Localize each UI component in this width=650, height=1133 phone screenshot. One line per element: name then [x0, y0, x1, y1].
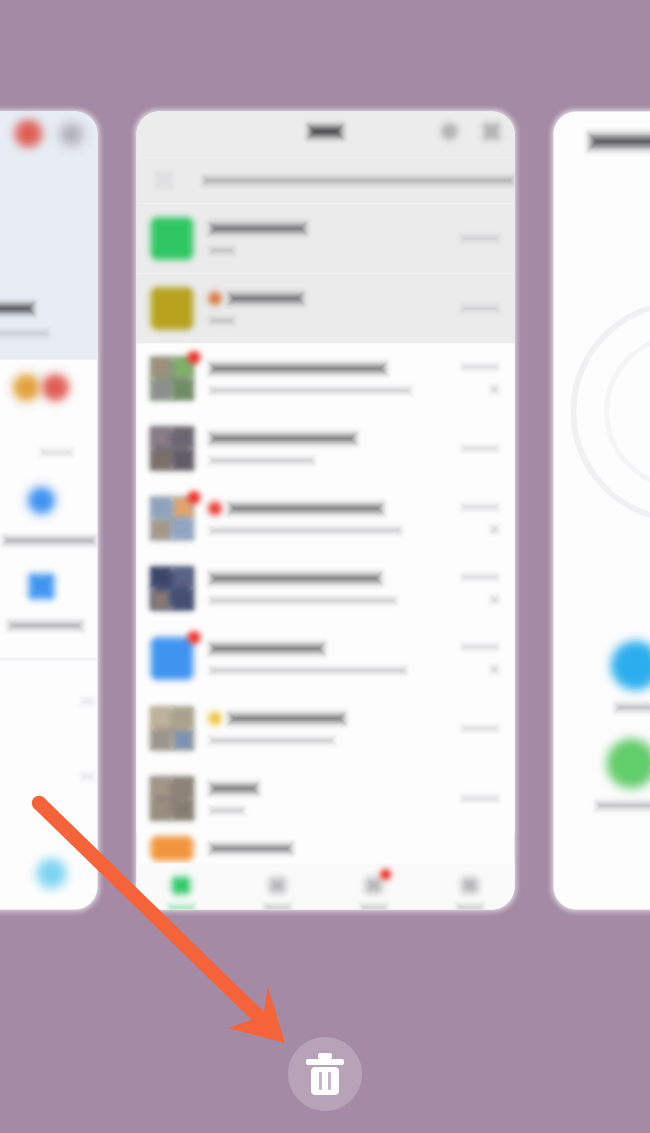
button[interactable]: Tab	[229, 863, 325, 915]
button[interactable]	[133, 203, 518, 273]
button[interactable]	[133, 623, 518, 693]
button[interactable]: Tab	[133, 863, 229, 915]
button[interactable]	[133, 413, 518, 483]
button[interactable]	[133, 553, 518, 623]
button[interactable]: Search	[439, 121, 460, 142]
button[interactable]	[133, 273, 518, 343]
button[interactable]	[133, 693, 518, 763]
button[interactable]: Tab	[422, 863, 518, 915]
button[interactable]	[133, 763, 518, 833]
button[interactable]	[133, 343, 518, 413]
button[interactable]: Tab	[325, 863, 422, 915]
button[interactable]	[133, 483, 518, 553]
button[interactable]: New chat	[460, 121, 502, 142]
button[interactable]: Close all apps	[288, 1037, 362, 1111]
